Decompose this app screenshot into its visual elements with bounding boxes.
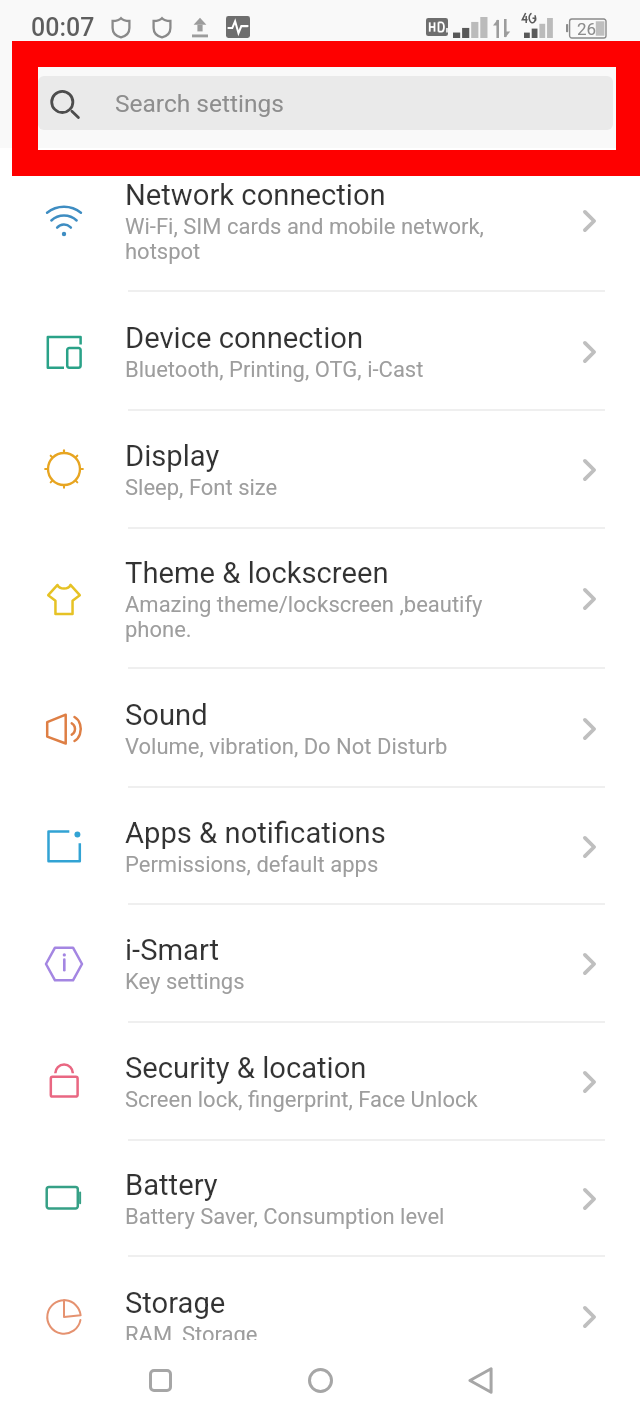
staticText: Permissions, default apps — [125, 852, 379, 878]
button[interactable]: Network connection — [0, 150, 640, 292]
staticText: Sleep, Font size — [125, 475, 278, 501]
staticText: Network connection — [125, 178, 386, 212]
button[interactable]: Search settings — [38, 76, 613, 130]
button[interactable]: Apps & notifications — [0, 788, 640, 905]
staticText: Apps & notifications — [125, 816, 386, 850]
button[interactable]: Security & location — [0, 1023, 640, 1141]
button[interactable]: Battery — [0, 1141, 640, 1257]
button[interactable]: Storage — [0, 1257, 640, 1377]
staticText: Security & location — [125, 1051, 367, 1085]
staticText: Key settings — [125, 969, 245, 995]
staticText: RAM, Storage — [125, 1322, 258, 1348]
button[interactable]: i-Smart — [0, 905, 640, 1023]
staticText: i-Smart — [125, 933, 220, 967]
button[interactable]: Display — [0, 411, 640, 529]
button[interactable]: Theme & lockscreen — [0, 529, 640, 669]
button[interactable]: Sound — [0, 669, 640, 788]
button[interactable]: Back — [400, 1340, 560, 1422]
staticText: 00:07 — [31, 13, 95, 42]
staticText: Screen lock, fingerprint, Face Unlock — [125, 1087, 478, 1113]
staticText: Device connection — [125, 321, 364, 355]
staticText: Sound — [125, 698, 208, 732]
staticText: Display — [125, 439, 220, 473]
staticText: 26 — [577, 19, 597, 38]
staticText: Battery — [125, 1168, 218, 1202]
staticText: Theme & lockscreen — [125, 556, 389, 590]
button[interactable]: Home — [240, 1340, 400, 1422]
staticText: Volume, vibration, Do Not Disturb — [125, 734, 448, 760]
button[interactable]: Device connection — [0, 292, 640, 411]
staticText: Wi-Fi, SIM cards and mobile network, hot… — [125, 214, 484, 265]
staticText: Storage — [125, 1286, 226, 1320]
staticText: Battery Saver, Consumption level — [125, 1204, 445, 1230]
button[interactable]: Recents — [80, 1340, 240, 1422]
staticText: Search settings — [115, 89, 284, 118]
staticText: Amazing theme/lockscreen ,beautify phone… — [125, 592, 483, 643]
staticText: Bluetooth, Printing, OTG, i-Cast — [125, 357, 424, 383]
